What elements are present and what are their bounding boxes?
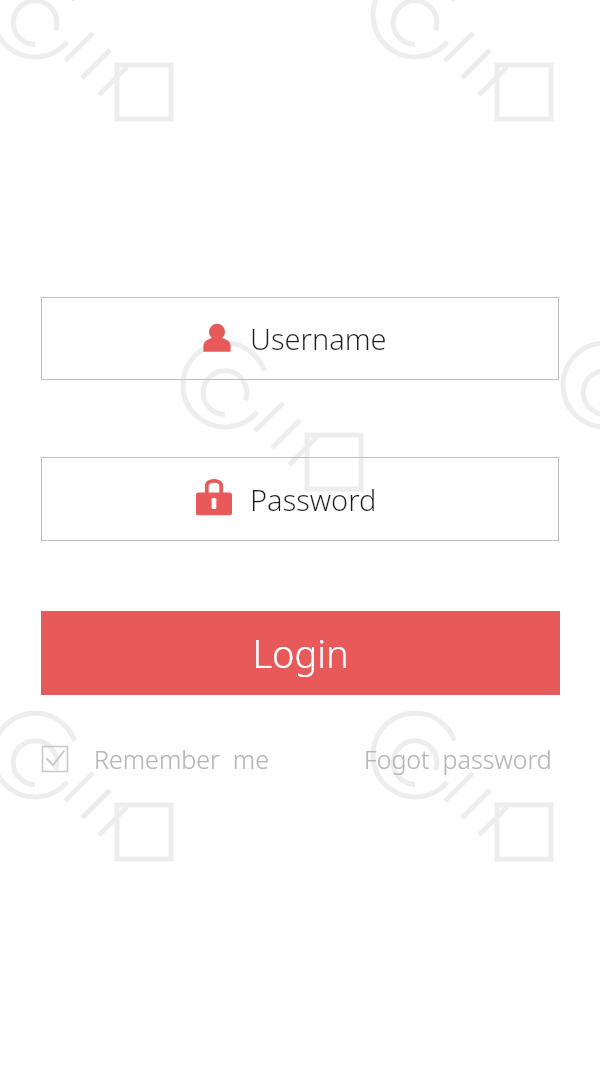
staticText: Remember me	[94, 742, 269, 776]
staticText: Fogot password	[364, 742, 552, 776]
button[interactable]: Password	[41, 457, 559, 541]
staticText: Password	[250, 480, 377, 519]
button[interactable]: Login	[41, 611, 560, 695]
button[interactable]: Username	[41, 297, 559, 380]
staticText: Username	[250, 319, 387, 358]
button[interactable]: Fogot password	[360, 738, 565, 780]
staticText: Login	[252, 627, 349, 679]
button[interactable]: Remember me	[38, 738, 282, 780]
